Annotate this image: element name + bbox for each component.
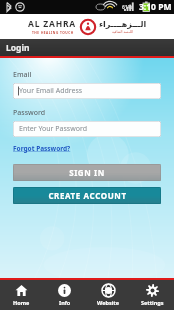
staticText: AL ZAHRA [28, 18, 77, 30]
button[interactable]: Enter Your Password [13, 121, 161, 137]
button[interactable]: Info [43, 280, 86, 310]
staticText: Forgot Password? [13, 144, 71, 153]
button[interactable]: Your Email Address [13, 83, 161, 99]
staticText: Email [13, 70, 32, 80]
staticText: Your Email Address [19, 86, 83, 96]
button[interactable]: Forgot Password? [13, 144, 71, 153]
button[interactable]: Website [86, 280, 130, 310]
staticText: Password [13, 108, 46, 118]
staticText: Enter Your Password [19, 124, 87, 134]
staticText: THE HEALING TOUCH [32, 31, 74, 35]
staticText: 61% [122, 4, 133, 11]
button[interactable]: CREATE ACCOUNT [13, 187, 161, 204]
staticText: CREATE ACCOUNT [48, 190, 127, 201]
button[interactable]: SIGN IN [13, 164, 161, 181]
staticText: Home [13, 299, 30, 306]
button[interactable]: Settings [130, 280, 174, 310]
staticText: Login [6, 42, 30, 54]
staticText: 3:10 PM [139, 1, 172, 13]
staticText: الـــزهــــراء [99, 20, 147, 29]
staticText: SIGN IN [69, 167, 105, 178]
staticText: Settings [141, 299, 164, 306]
staticText: اللمسة الشافية [112, 29, 134, 34]
staticText: Website [97, 299, 120, 306]
staticText: Info [59, 299, 71, 306]
button[interactable]: Home [0, 280, 43, 310]
